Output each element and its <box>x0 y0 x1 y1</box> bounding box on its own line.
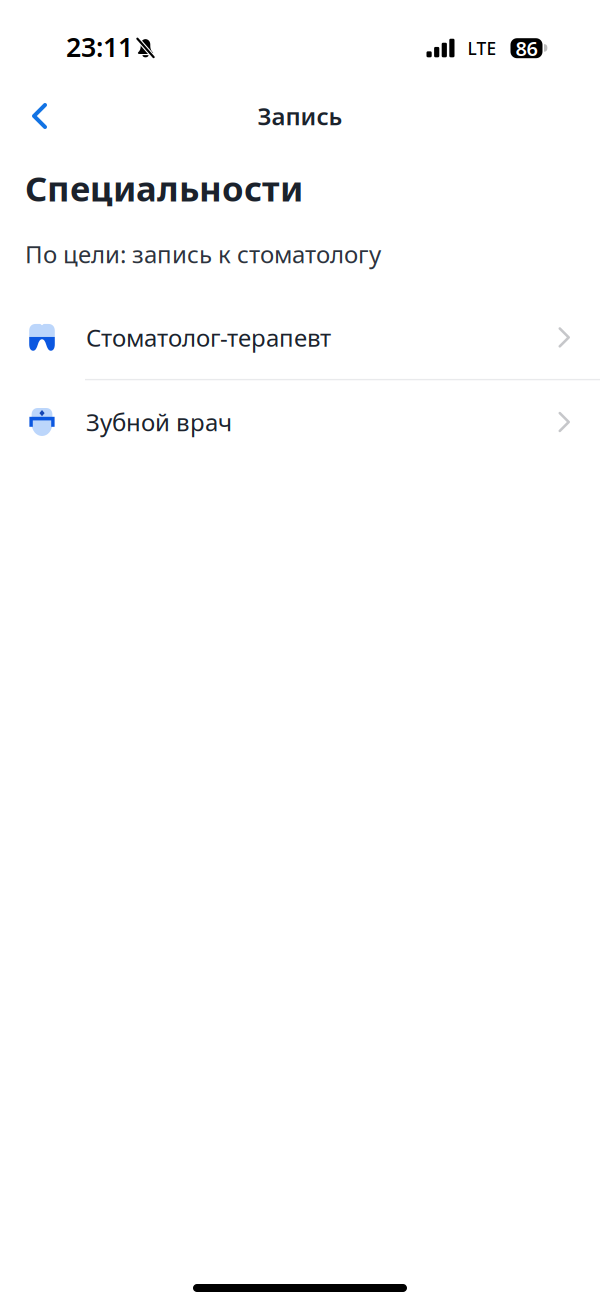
staticText: 86 <box>515 35 537 61</box>
staticText: Специальности <box>25 165 303 211</box>
staticText: 23:11 <box>66 29 133 64</box>
button[interactable]: Back <box>0 91 69 141</box>
staticText: Зубной врач <box>86 406 232 438</box>
staticText: По цели: запись к стоматологу <box>25 238 381 270</box>
button[interactable]: Стоматолог-терапевт <box>0 296 600 379</box>
staticText: Запись <box>257 100 342 132</box>
staticText: Стоматолог-терапевт <box>86 321 331 353</box>
staticText: LTE <box>467 37 496 60</box>
button[interactable]: Зубной врач <box>0 380 600 463</box>
